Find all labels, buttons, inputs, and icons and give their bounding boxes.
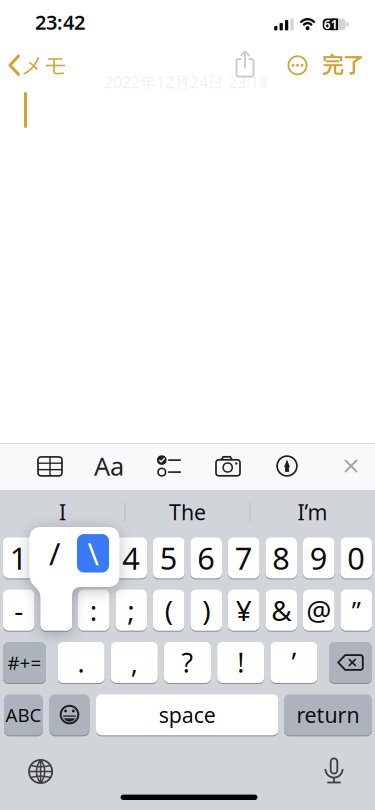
button[interactable]: ! (217, 642, 264, 683)
staticText: #+= (7, 650, 41, 675)
staticText: 0 (347, 537, 365, 578)
staticText: 5 (160, 537, 178, 578)
staticText: I’m (297, 498, 327, 526)
button[interactable]: More (0, 0, 375, 810)
button[interactable]: 5 (153, 537, 184, 578)
button[interactable]: 0 (340, 537, 372, 578)
staticText: Aa (94, 449, 124, 483)
staticText: space (159, 701, 216, 729)
button[interactable]: ” (340, 590, 372, 631)
button[interactable]: ; (115, 590, 147, 631)
staticText: & (271, 592, 291, 629)
button[interactable]: メモ Back (0, 0, 375, 810)
button[interactable]: Format (0, 0, 375, 810)
button[interactable]: ¥ (228, 590, 259, 631)
button[interactable]: Dismiss keyboard (0, 0, 375, 810)
button[interactable]: ) (190, 590, 222, 631)
button[interactable]: ( (153, 590, 184, 631)
button[interactable]: 1 (3, 537, 34, 578)
button[interactable]: Delete (329, 642, 372, 683)
button[interactable]: & (265, 590, 297, 631)
button[interactable]: Checklist (0, 0, 375, 810)
staticText: ? (181, 645, 193, 680)
staticText: I (59, 498, 66, 526)
button[interactable]: ABC (4, 694, 43, 735)
button[interactable]: Insert photo (0, 0, 375, 810)
staticText: ) (202, 592, 210, 629)
button[interactable]: 8 (265, 537, 297, 578)
staticText: 1 (10, 537, 28, 578)
staticText: ¥ (236, 592, 252, 629)
button[interactable]: Share (0, 0, 375, 810)
button[interactable]: Dictate (0, 0, 375, 810)
staticText: 2 (47, 537, 65, 578)
button[interactable]: 3 (78, 537, 109, 578)
button[interactable]: : (78, 590, 109, 631)
button[interactable]: Insert table (0, 0, 375, 810)
staticText: ABC (5, 702, 41, 727)
button[interactable]: return (284, 694, 372, 735)
button[interactable]: ’ (270, 642, 317, 683)
staticText: 4 (122, 537, 140, 578)
button[interactable]: Emoji (49, 694, 89, 735)
button[interactable]: #+= (3, 642, 46, 683)
staticText: 3 (85, 537, 103, 578)
button[interactable]: 9 (303, 537, 334, 578)
staticText: / (49, 533, 60, 574)
button[interactable]: Markup (0, 0, 375, 810)
staticText: メモ (21, 52, 67, 79)
staticText: 6 (197, 537, 215, 578)
staticText: The (169, 498, 206, 526)
button[interactable]: 2 (40, 537, 72, 578)
staticText: . (78, 645, 85, 680)
staticText: \ (87, 533, 98, 574)
button[interactable]: space (96, 694, 278, 735)
button[interactable]: 6 (190, 537, 222, 578)
button[interactable]: I (0, 0, 375, 810)
button[interactable]: / (40, 590, 72, 631)
staticText: ’ (291, 645, 296, 680)
staticText: ! (237, 645, 244, 680)
button[interactable]: @ (303, 590, 334, 631)
button[interactable]: 7 (228, 537, 259, 578)
staticText: : (90, 592, 98, 629)
staticText: 8 (272, 537, 290, 578)
button[interactable]: - (3, 590, 34, 631)
staticText: , (131, 645, 138, 680)
button[interactable]: , (111, 642, 158, 683)
staticText: ( (165, 592, 173, 629)
staticText: ; (127, 592, 135, 629)
staticText: @ (306, 592, 331, 629)
button[interactable]: The (0, 0, 375, 810)
staticText: return (296, 701, 359, 729)
button[interactable]: . (58, 642, 105, 683)
staticText: 7 (235, 537, 253, 578)
button[interactable]: 完了 (0, 0, 375, 810)
button[interactable]: ? (164, 642, 211, 683)
button[interactable]: Next keyboard (0, 0, 375, 810)
staticText: 9 (310, 537, 328, 578)
staticText: 23:42 (35, 9, 85, 35)
staticText: ” (352, 593, 361, 627)
staticText: - (14, 592, 23, 629)
button[interactable]: 4 (115, 537, 147, 578)
staticText: 2022年12月24日 23:18 (104, 71, 268, 93)
staticText: 61 (324, 16, 338, 32)
staticText: 完了 (322, 52, 364, 79)
button[interactable]: I’m (0, 0, 375, 810)
